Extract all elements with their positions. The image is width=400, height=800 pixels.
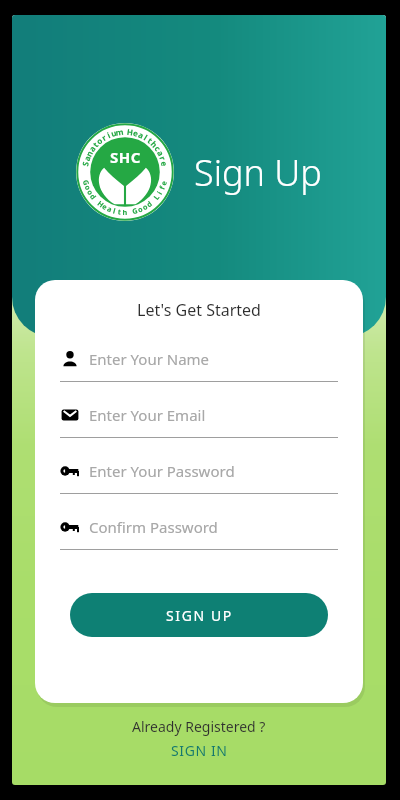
staticText: SIGN IN [171, 741, 228, 760]
staticText: Let's Get Started [35, 299, 363, 321]
staticText: Enter Your Name [89, 349, 210, 369]
button[interactable]: Enter Your Email [35, 405, 363, 461]
button[interactable]: Confirm Password [35, 517, 363, 573]
button[interactable]: Enter Your Name [35, 349, 363, 405]
staticText: SIGN UP [166, 606, 233, 625]
staticText: Enter Your Email [89, 405, 206, 425]
button[interactable]: SIGN UP [70, 593, 328, 637]
staticText: Already Registered ? [132, 717, 266, 736]
staticText: SHC [110, 147, 141, 167]
staticText: Confirm Password [89, 517, 218, 537]
staticText: Enter Your Password [89, 461, 235, 481]
button[interactable]: Enter Your Password [35, 461, 363, 517]
staticText: Sign Up [194, 148, 322, 197]
button[interactable]: SIGN IN [163, 739, 236, 762]
